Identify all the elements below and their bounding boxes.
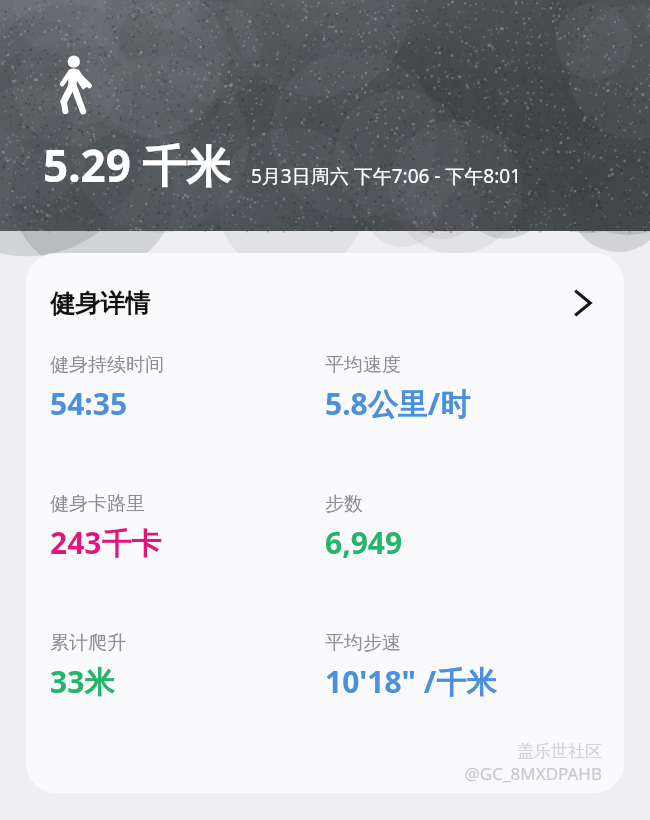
staticText: 步数 bbox=[325, 492, 363, 516]
staticText: 健身卡路里 bbox=[50, 492, 145, 516]
other: 查看健身详情 bbox=[568, 288, 598, 318]
staticText: 平均速度 bbox=[325, 353, 401, 377]
staticText: @GC_8MXDPAHB bbox=[464, 762, 602, 785]
staticText: 6,949 bbox=[325, 522, 403, 563]
staticText: 5月3日周六 下午7:06 - 下午8:01 bbox=[251, 163, 522, 189]
staticText: 54:35 bbox=[50, 383, 128, 424]
staticText: 5.8公里/时 bbox=[325, 383, 471, 424]
staticText: 243千卡 bbox=[50, 522, 162, 563]
button[interactable]: 健身详情 bbox=[26, 253, 624, 353]
staticText: 盖乐世社区 bbox=[517, 741, 602, 762]
staticText: 健身详情 bbox=[50, 288, 150, 319]
staticText: 33米 bbox=[50, 661, 115, 702]
staticText: 健身持续时间 bbox=[50, 353, 164, 377]
staticText: 5.29 千米 bbox=[43, 135, 231, 195]
staticText: 平均步速 bbox=[325, 631, 401, 655]
staticText: 10'18" /千米 bbox=[325, 661, 497, 702]
staticText: 累计爬升 bbox=[50, 631, 126, 655]
